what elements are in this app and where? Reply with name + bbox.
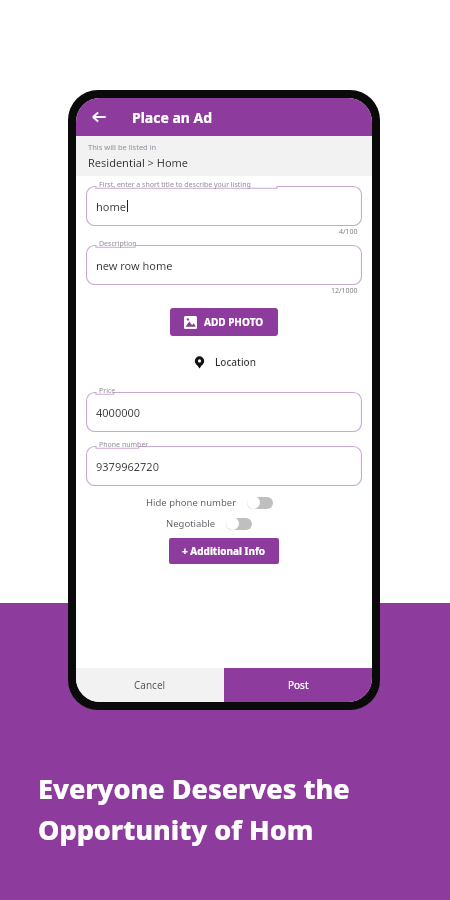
staticText: Price xyxy=(99,386,116,396)
button[interactable]: Location xyxy=(185,352,264,372)
button[interactable]: + Additional Info xyxy=(169,538,279,564)
staticText: Description xyxy=(99,239,137,249)
staticText: Location xyxy=(215,355,256,369)
staticText: Phone number xyxy=(99,440,149,450)
staticText: Post xyxy=(288,678,309,692)
button[interactable]: Post xyxy=(224,668,372,702)
button[interactable]: new row home xyxy=(86,239,362,285)
staticText: 12/1000 xyxy=(331,286,358,296)
staticText: This will be listed in xyxy=(88,142,157,152)
staticText: home xyxy=(96,199,126,214)
staticText: Negotiable xyxy=(166,517,216,530)
staticText: + Additional Info xyxy=(182,544,266,558)
button[interactable]: 4000000 xyxy=(86,386,362,432)
button[interactable]: Back xyxy=(84,102,114,132)
staticText: 9379962720 xyxy=(96,459,159,474)
staticText: Everyone Deserves the xyxy=(38,770,350,807)
button[interactable]: Hide phone number xyxy=(86,496,362,509)
staticText: 4/100 xyxy=(339,227,358,237)
staticText: First, enter a short title to describe y… xyxy=(99,180,251,190)
staticText: Opportunity of Hom xyxy=(38,811,314,848)
button[interactable]: ADD PHOTO xyxy=(170,308,278,336)
staticText: Residential > Home xyxy=(88,155,189,170)
button[interactable]: Negotiable xyxy=(86,517,362,530)
staticText: Cancel xyxy=(134,678,166,692)
staticText: 4000000 xyxy=(96,405,141,420)
staticText: new row home xyxy=(96,258,173,273)
staticText: Hide phone number xyxy=(146,496,237,509)
button[interactable]: home xyxy=(86,180,362,226)
button[interactable]: Cancel xyxy=(76,668,224,702)
staticText: ADD PHOTO xyxy=(204,315,264,329)
staticText: Place an Ad xyxy=(132,108,213,127)
button[interactable]: 9379962720 xyxy=(86,440,362,486)
